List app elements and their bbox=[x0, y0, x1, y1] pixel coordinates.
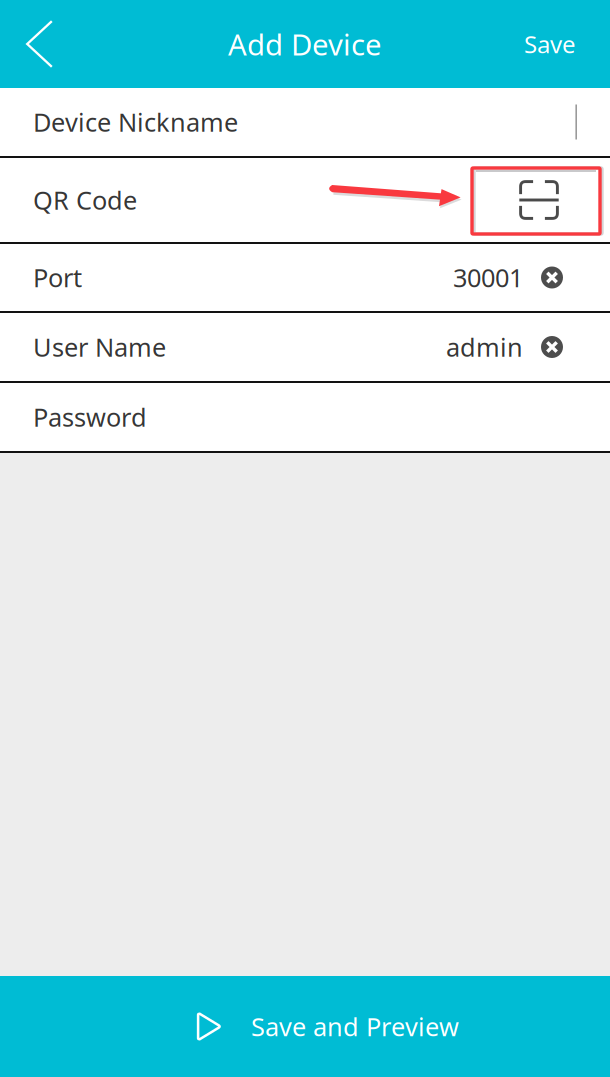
staticText: QR Code bbox=[33, 183, 137, 217]
button[interactable]: Device Nickname bbox=[0, 88, 610, 158]
staticText: Save and Preview bbox=[251, 1010, 459, 1043]
staticText: 30001 bbox=[453, 261, 523, 294]
button[interactable]: Scan QR Code bbox=[0, 158, 610, 244]
button[interactable]: User Name bbox=[0, 313, 610, 383]
button[interactable]: Port bbox=[0, 244, 610, 313]
staticText: Device Nickname bbox=[33, 105, 238, 139]
button[interactable]: Save and Preview bbox=[0, 976, 610, 1077]
staticText: Password bbox=[33, 400, 147, 434]
staticText: Save bbox=[524, 28, 576, 60]
staticText: Add Device bbox=[228, 24, 382, 63]
button[interactable]: Password bbox=[0, 383, 610, 453]
staticText: admin bbox=[446, 330, 523, 364]
button[interactable]: Clear Port bbox=[541, 266, 563, 288]
button[interactable]: Clear User Name bbox=[541, 336, 563, 358]
button[interactable]: Save bbox=[524, 0, 610, 88]
staticText: User Name bbox=[33, 330, 166, 364]
staticText: Port bbox=[33, 261, 82, 294]
button[interactable]: Back bbox=[0, 0, 65, 88]
